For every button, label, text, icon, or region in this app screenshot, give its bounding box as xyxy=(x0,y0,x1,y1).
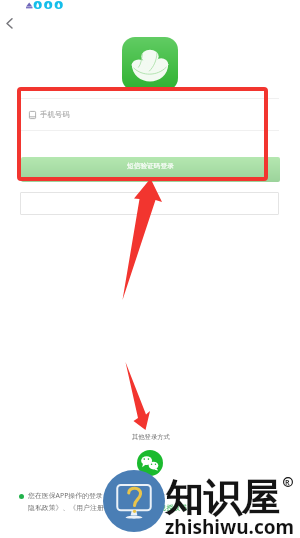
staticText: 短信验证码登录 xyxy=(127,162,174,170)
button[interactable]: Agree to terms xyxy=(16,491,26,501)
staticText: 其他登录方式 xyxy=(132,433,170,441)
staticText: zhishiwu.com xyxy=(165,514,295,538)
staticText: 您在医保APP操作的登录、注册行为视为同意《 xyxy=(28,491,172,500)
button[interactable]: 其他登录方式 xyxy=(111,430,191,444)
button[interactable]: WeChat login xyxy=(137,450,163,476)
button[interactable]: 短信验证码登录 xyxy=(21,157,280,182)
staticText: 知识屋 xyxy=(165,474,279,522)
staticText: R xyxy=(285,478,290,488)
button[interactable]: Back xyxy=(0,14,20,34)
button[interactable]: 手机号码 xyxy=(29,99,279,130)
button[interactable]: 《个人信息授权书》 xyxy=(132,503,195,512)
staticText: 手机号码 xyxy=(40,110,70,119)
staticText: 隐私政策》、《用户注册协议》、 xyxy=(28,503,132,512)
